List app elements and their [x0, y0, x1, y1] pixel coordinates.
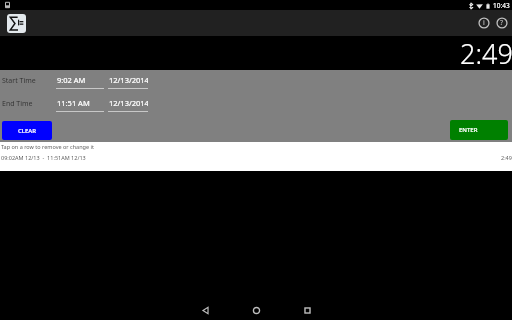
- staticText: ?: [500, 18, 504, 28]
- staticText: 12/13/2014: [109, 98, 148, 108]
- staticText: i: [483, 18, 485, 28]
- button[interactable]: Help: [494, 15, 510, 31]
- staticText: 10:43: [493, 1, 510, 10]
- button[interactable]: Recents: [297, 300, 317, 320]
- staticText: Start Time: [2, 76, 56, 86]
- button[interactable]: 12/13/2014: [108, 98, 148, 112]
- staticText: 11:51 AM: [57, 98, 90, 108]
- staticText: 12/13/2014: [109, 75, 148, 85]
- staticText: 2:49: [460, 35, 512, 69]
- staticText: 09:02AM 12/13 - 11:51AM 12/13: [1, 154, 86, 161]
- staticText: Tap on a row to remove or change it: [1, 143, 94, 150]
- button[interactable]: Home: [246, 300, 266, 320]
- staticText: CLEAR: [18, 127, 37, 135]
- button[interactable]: 09:02AM 12/13 - 11:51AM 12/13: [0, 154, 512, 161]
- button[interactable]: 11:51 AM: [56, 98, 104, 112]
- button[interactable]: ENTER: [450, 120, 508, 140]
- staticText: 9:02 AM: [57, 75, 86, 85]
- button[interactable]: 12/13/2014: [108, 75, 148, 89]
- staticText: 2:49: [501, 154, 512, 161]
- button[interactable]: 9:02 AM: [56, 75, 104, 89]
- staticText: ENTER: [459, 126, 478, 134]
- staticText: End Time: [2, 99, 56, 109]
- button[interactable]: CLEAR: [2, 121, 52, 140]
- button[interactable]: Info: [476, 15, 492, 31]
- button[interactable]: App icon: [7, 14, 26, 33]
- button[interactable]: Back: [195, 300, 215, 320]
